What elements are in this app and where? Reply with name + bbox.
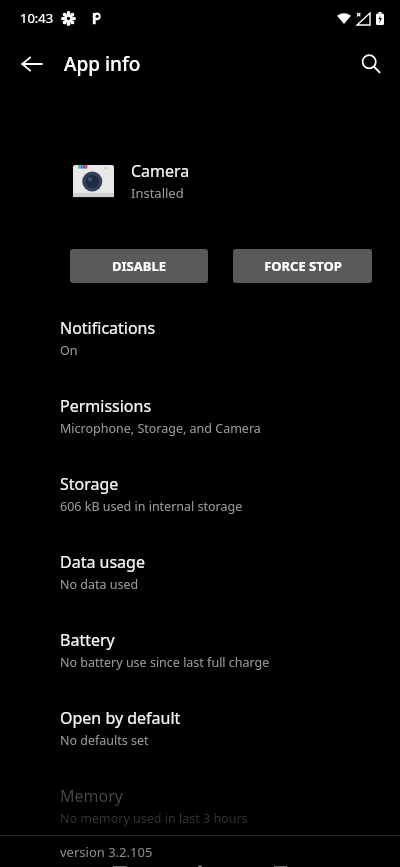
staticText: Permissions xyxy=(60,395,152,417)
button[interactable]: Permissions xyxy=(0,387,400,445)
staticText: 10:43 xyxy=(20,9,54,27)
button[interactable]: Search xyxy=(347,40,395,88)
button[interactable]: Back xyxy=(8,40,56,88)
button[interactable]: Storage xyxy=(0,465,400,523)
staticText: Installed xyxy=(131,184,184,202)
staticText: version 3.2.105 xyxy=(60,843,153,861)
button[interactable]: Memory xyxy=(0,777,400,835)
staticText: Memory xyxy=(60,785,123,807)
staticText: FORCE STOP xyxy=(264,257,342,275)
button[interactable]: Data usage xyxy=(0,543,400,601)
staticText: DISABLE xyxy=(112,257,166,275)
staticText: Data usage xyxy=(60,551,145,573)
button[interactable]: DISABLE xyxy=(70,249,208,283)
staticText: Microphone, Storage, and Camera xyxy=(60,420,261,437)
button[interactable]: Notifications xyxy=(0,309,400,367)
staticText: No battery use since last full charge xyxy=(60,654,270,671)
staticText: Camera xyxy=(131,160,190,182)
staticText: Battery xyxy=(60,629,115,651)
staticText: No data used xyxy=(60,576,139,593)
staticText: Open by default xyxy=(60,707,181,729)
button[interactable]: Open by default xyxy=(0,699,400,757)
button[interactable]: FORCE STOP xyxy=(233,249,372,283)
staticText: App info xyxy=(64,51,141,77)
staticText: No memory used in last 3 hours xyxy=(60,810,248,827)
staticText: On xyxy=(60,342,78,359)
staticText: No defaults set xyxy=(60,732,149,749)
staticText: Storage xyxy=(60,473,119,495)
button[interactable]: Battery xyxy=(0,621,400,679)
staticText: Notifications xyxy=(60,317,156,339)
staticText: 606 kB used in internal storage xyxy=(60,498,243,515)
